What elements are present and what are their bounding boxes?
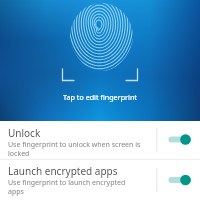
- button[interactable]: Unlock: [0, 120, 200, 159]
- button[interactable]: Toggle Unlock: [156, 120, 200, 159]
- button[interactable]: Toggle Launch encrypted apps: [156, 160, 200, 200]
- staticText: Launch encrypted apps: [8, 164, 118, 178]
- staticText: Tap to edit fingerprint: [63, 92, 137, 102]
- staticText: Use fingerprint to unlock when screen is…: [8, 140, 142, 158]
- staticText: Use fingerprint to launch encrypted apps: [8, 178, 142, 196]
- staticText: Unlock: [8, 126, 41, 140]
- button[interactable]: Launch encrypted apps: [0, 160, 200, 200]
- button[interactable]: Tap to edit fingerprint: [0, 0, 200, 120]
